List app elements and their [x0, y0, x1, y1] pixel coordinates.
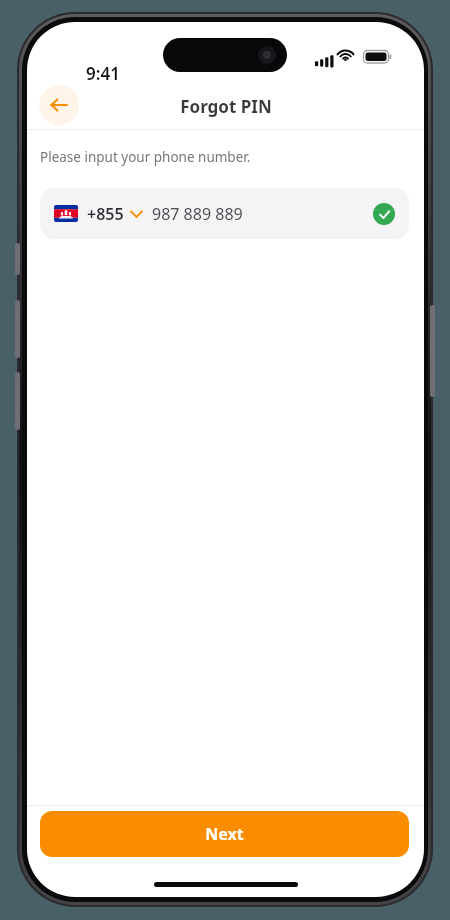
- staticText: 9:41: [86, 62, 120, 85]
- button[interactable]: Next: [40, 811, 409, 857]
- staticText: 987 889 889: [152, 203, 243, 225]
- button[interactable]: Back: [39, 85, 79, 125]
- staticText: Forgot PIN: [180, 95, 272, 118]
- staticText: +855: [87, 203, 124, 225]
- staticText: Please input your phone number.: [40, 148, 251, 166]
- button[interactable]: +855: [40, 188, 409, 239]
- staticText: Next: [205, 823, 244, 845]
